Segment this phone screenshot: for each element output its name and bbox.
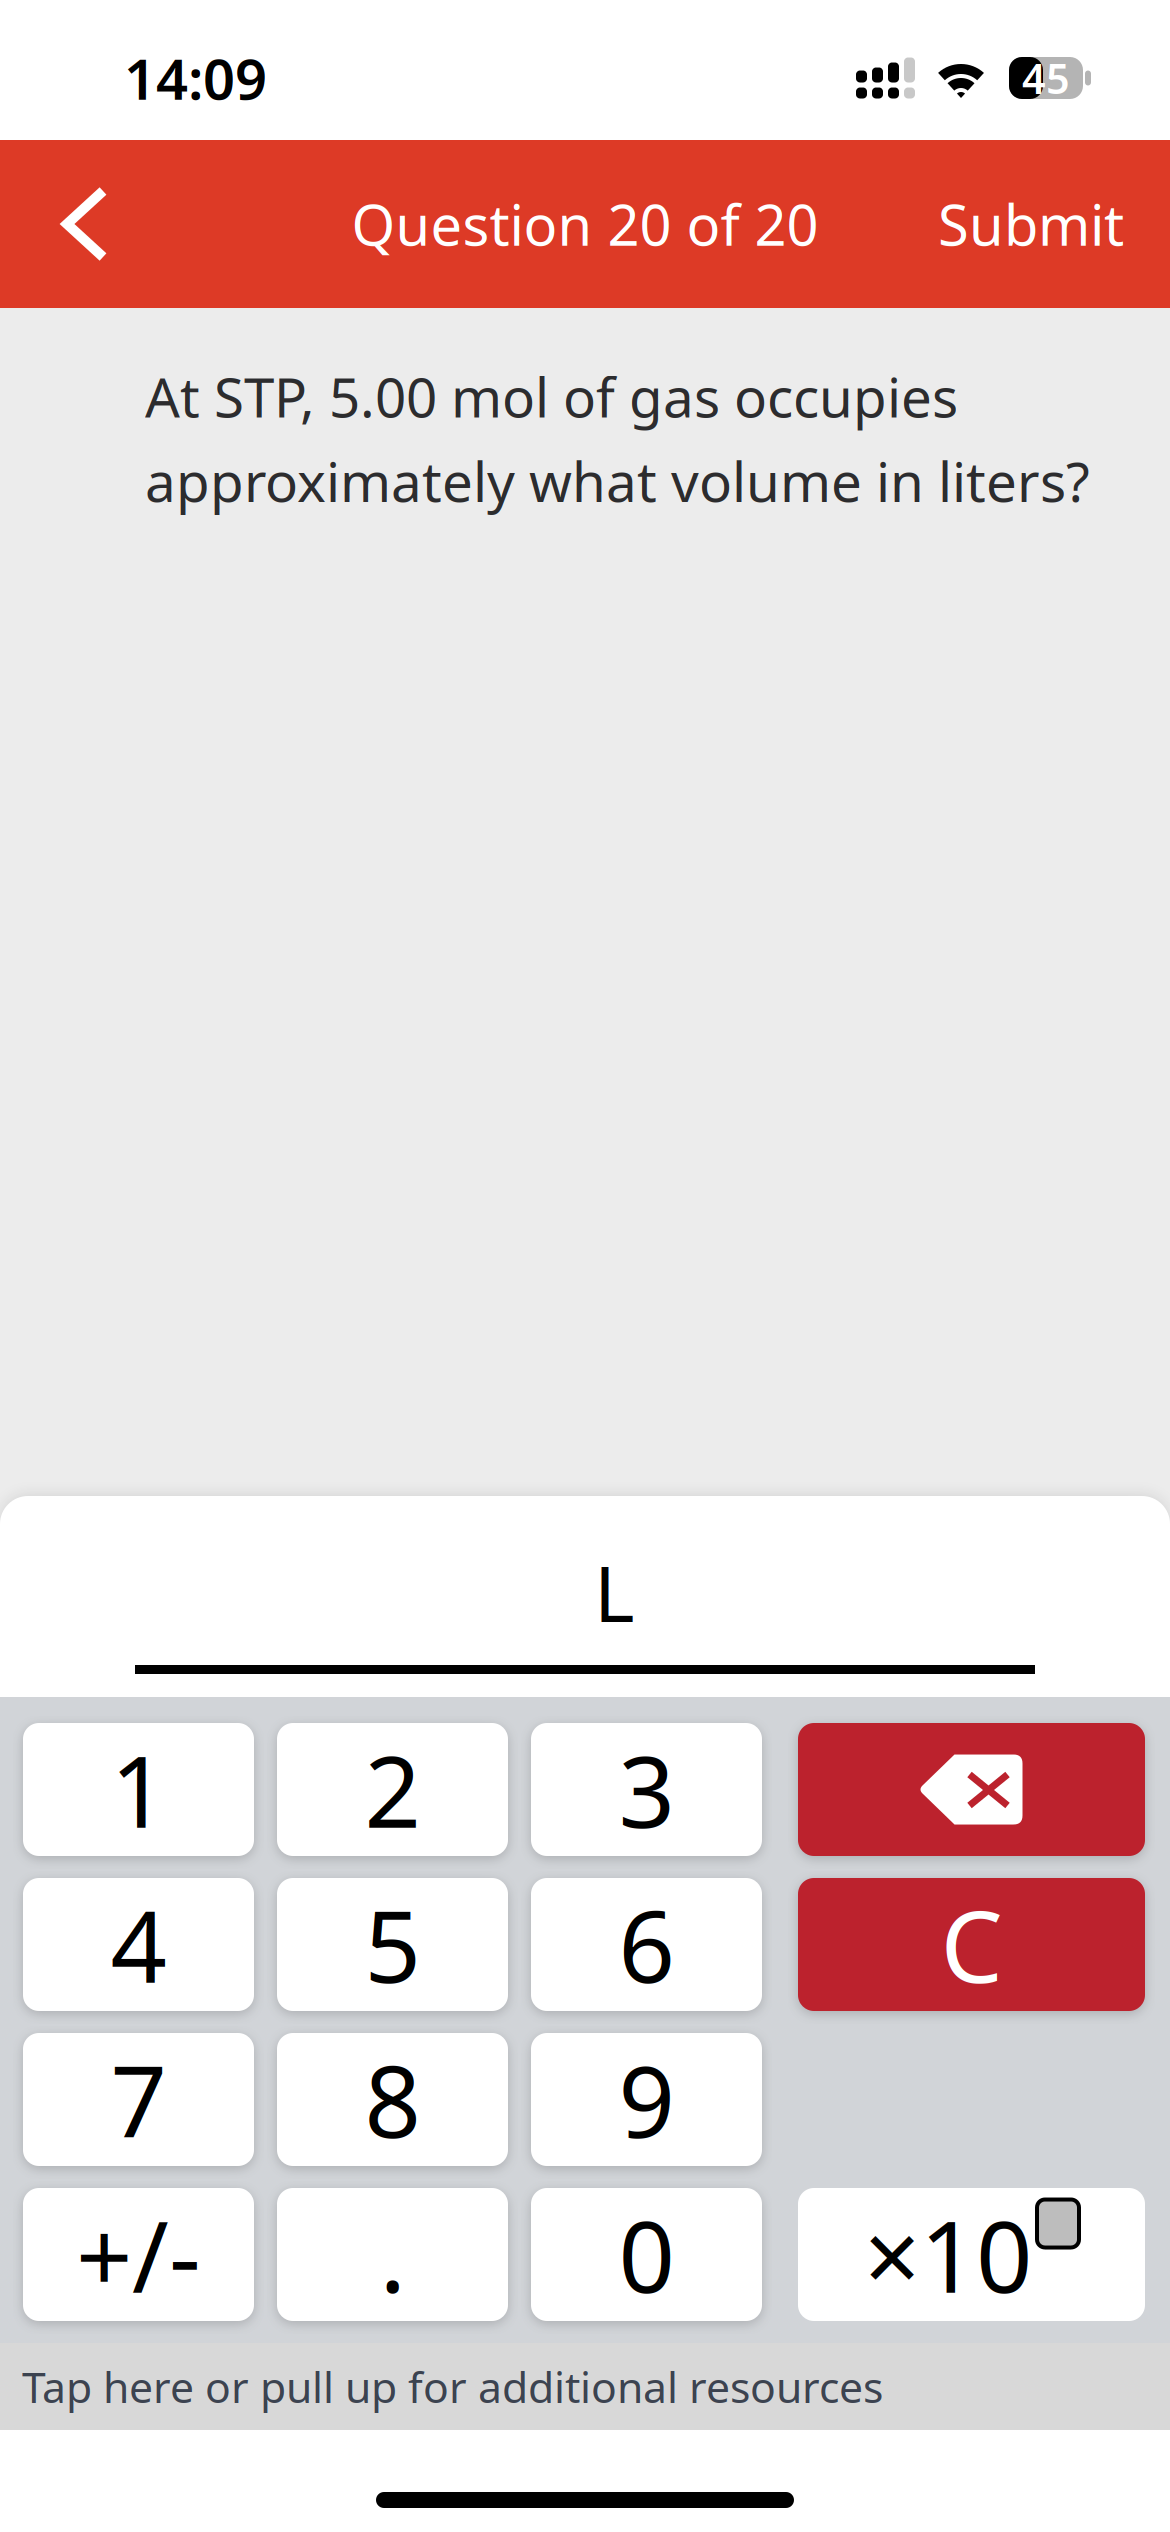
staticText: 2	[364, 1724, 420, 1855]
staticText: Tap here or pull up for additional resou…	[22, 2358, 883, 2415]
button[interactable]: 0	[531, 2188, 762, 2321]
staticText: 3	[618, 1724, 674, 1855]
staticText: 5	[364, 1879, 420, 2010]
button[interactable]: 4	[23, 1878, 254, 2011]
button[interactable]: Backspace	[798, 1723, 1145, 1856]
staticText: 0	[618, 2189, 674, 2320]
staticText: L	[594, 1541, 635, 1643]
staticText: .	[379, 2189, 405, 2320]
button[interactable]: 8	[277, 2033, 508, 2166]
staticText: 6	[618, 1879, 674, 2010]
staticText: ×10	[864, 2189, 1032, 2320]
button[interactable]: Back	[0, 140, 290, 308]
staticText: 7	[110, 2034, 166, 2165]
button[interactable]: 3	[531, 1723, 762, 1856]
button[interactable]: 7	[23, 2033, 254, 2166]
button[interactable]: 5	[277, 1878, 508, 2011]
staticText: 8	[364, 2034, 420, 2165]
button[interactable]: C	[798, 1878, 1145, 2011]
staticText: 1	[110, 1724, 166, 1855]
staticText: C	[940, 1879, 1002, 2010]
staticText: 4	[110, 1879, 166, 2010]
button[interactable]: 9	[531, 2033, 762, 2166]
button[interactable]: Times ten to the power of	[798, 2188, 1145, 2321]
staticText: Question 20 of 20	[351, 187, 818, 261]
staticText: At STP, 5.00 mol of gas occupies approxi…	[145, 360, 1090, 517]
button[interactable]: Tap here or pull up for additional resou…	[0, 2343, 1170, 2430]
button[interactable]: 2	[277, 1723, 508, 1856]
staticText: +/-	[76, 2189, 201, 2320]
staticText: 14:09	[124, 41, 267, 115]
button[interactable]: 6	[531, 1878, 762, 2011]
button[interactable]: 1	[23, 1723, 254, 1856]
button[interactable]: +/-	[23, 2188, 254, 2321]
button[interactable]: .	[277, 2188, 508, 2321]
staticText: Submit	[938, 187, 1124, 261]
button[interactable]: Submit	[880, 140, 1170, 308]
staticText: 45	[1022, 51, 1070, 105]
staticText: 9	[618, 2034, 674, 2165]
